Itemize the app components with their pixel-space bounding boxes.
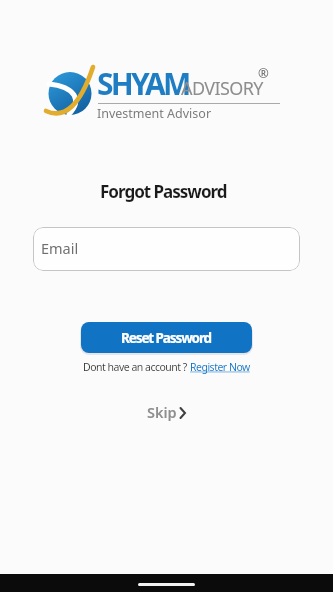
button[interactable]: Skip xyxy=(147,402,187,422)
staticText: ADVISORY xyxy=(181,76,263,101)
button[interactable]: Reset Password xyxy=(81,322,252,353)
staticText: Forgot Password xyxy=(100,180,227,203)
staticText: Dont have an account ? xyxy=(83,360,190,374)
staticText: Email xyxy=(41,238,79,258)
button[interactable]: Register Now xyxy=(190,360,250,374)
staticText: SHYAM xyxy=(97,63,189,104)
staticText: ® xyxy=(258,64,269,82)
staticText: Reset Password xyxy=(121,329,212,347)
staticText: Skip xyxy=(147,402,177,422)
staticText: Investment Advisor xyxy=(97,105,212,122)
button[interactable]: Email xyxy=(33,227,300,271)
